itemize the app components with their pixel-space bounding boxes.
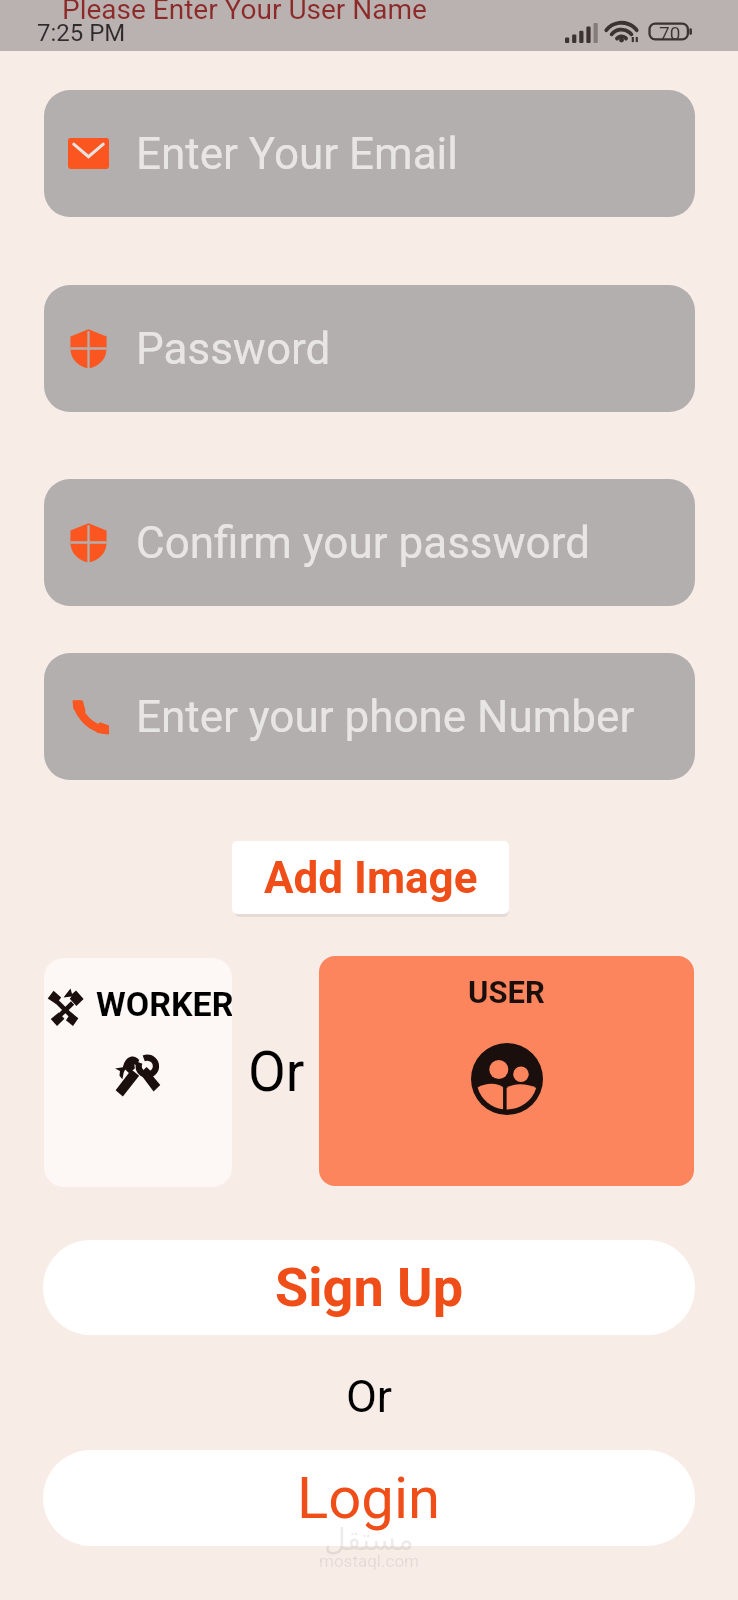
staticText: 70 <box>659 22 681 44</box>
staticText: Enter your phone Number <box>136 691 635 743</box>
staticText: USER <box>319 974 694 1010</box>
button[interactable]: Sign Up <box>43 1240 695 1335</box>
button[interactable]: Add Image <box>232 841 509 914</box>
staticText: Login <box>297 1464 441 1532</box>
staticText: مستقل <box>0 1522 738 1557</box>
staticText: 7:25 PM <box>37 19 126 47</box>
staticText: Password <box>136 323 331 375</box>
staticText: Add Image <box>264 852 478 904</box>
button[interactable]: USER <box>319 956 694 1186</box>
button[interactable]: Login <box>43 1450 695 1546</box>
button[interactable]: Enter Your Email <box>44 90 695 217</box>
staticText: Enter Your Email <box>136 128 458 180</box>
staticText: Sign Up <box>275 1256 464 1319</box>
staticText: Please Enter Your User Name <box>62 0 427 26</box>
staticText: Or <box>248 1040 305 1104</box>
button[interactable]: Confirm your password <box>44 479 695 606</box>
button[interactable]: Enter your phone Number <box>44 653 695 780</box>
staticText: Or <box>0 1370 738 1423</box>
staticText: WORKER <box>96 984 232 1024</box>
staticText: Confirm your password <box>136 517 591 569</box>
button[interactable]: Password <box>44 285 695 412</box>
button[interactable]: WORKER <box>44 958 232 1187</box>
